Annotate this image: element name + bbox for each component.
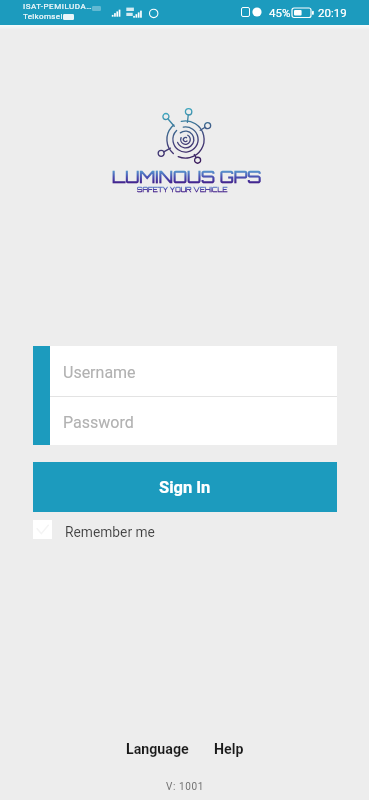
staticText: Sign In [159,478,211,497]
staticText: Telkomsel [23,12,63,21]
button[interactable]: Password [50,397,337,445]
staticText: Help [214,741,244,758]
staticText: Password [63,413,134,432]
staticText: Language [126,741,189,758]
staticText: ISAT-PEMILUDA… [23,2,93,11]
button[interactable]: Language [120,731,195,768]
button[interactable]: Sign In [33,462,337,512]
staticText: Username [63,363,136,382]
staticText: 20:19 [318,6,347,19]
button[interactable]: Remember me [33,520,155,539]
staticText: SAFETY YOUR VEHICLE [137,185,228,193]
button[interactable]: Help [208,731,250,768]
button[interactable]: Username [50,346,337,396]
staticText: 45% [269,6,291,19]
staticText: LUMINOUS GPS [112,166,262,187]
staticText: V: 1001 [166,781,204,793]
staticText: Remember me [65,524,155,540]
